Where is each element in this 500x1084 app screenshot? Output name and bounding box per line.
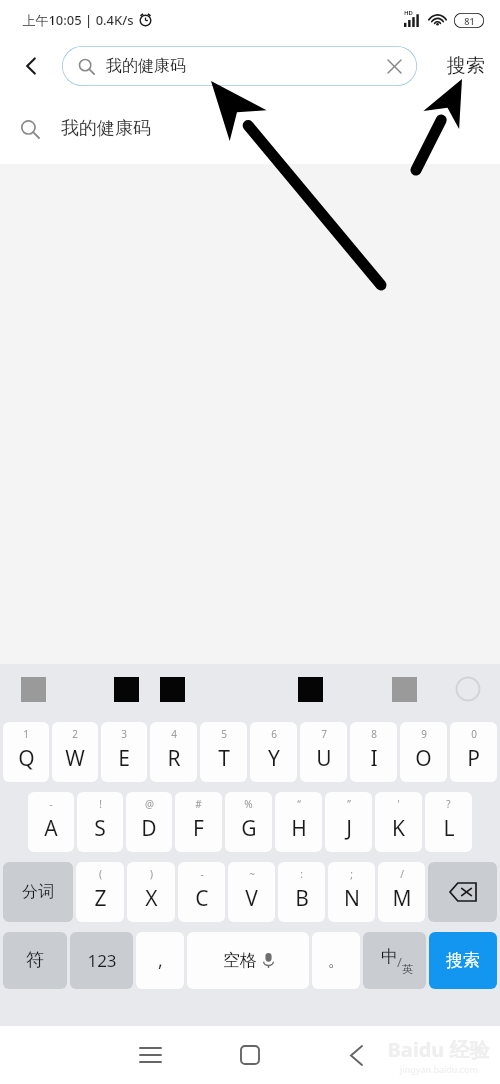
staticText: 9 — [421, 727, 427, 741]
button[interactable]: Home — [230, 1026, 270, 1084]
button[interactable]: 5 — [200, 722, 247, 782]
staticText: 上午10:05 | 0.4K/s — [22, 11, 134, 29]
button[interactable]: 符 — [3, 932, 67, 989]
staticText: X — [145, 884, 158, 913]
button[interactable]: 9 — [400, 722, 447, 782]
staticText: 搜索 — [447, 54, 485, 78]
staticText: % — [244, 797, 253, 811]
staticText: 4 — [171, 727, 177, 741]
button[interactable]: “ — [275, 792, 322, 852]
staticText: / — [400, 867, 404, 881]
button[interactable]: 6 — [250, 722, 297, 782]
button[interactable]: ” — [325, 792, 372, 852]
button[interactable]: Clear — [381, 53, 407, 79]
button[interactable]: 分词 — [3, 862, 73, 922]
staticText: Y — [268, 744, 280, 773]
button[interactable]: 空格 — [187, 932, 309, 989]
staticText: 81 — [464, 15, 475, 27]
button[interactable]: 。 — [312, 932, 360, 989]
staticText: 6 — [271, 727, 277, 741]
button[interactable]: 搜索 — [429, 932, 497, 989]
staticText: ? — [446, 797, 451, 811]
staticText: 3 — [121, 727, 127, 741]
staticText: 我的健康码 — [61, 117, 151, 140]
staticText: B — [295, 884, 309, 913]
staticText: C — [195, 884, 209, 913]
staticText: D — [141, 814, 157, 843]
button[interactable]: 2 — [52, 722, 98, 782]
button[interactable]: - — [178, 862, 225, 922]
button[interactable]: Keyboard settings — [455, 676, 481, 702]
button[interactable]: ~ — [228, 862, 275, 922]
button[interactable]: 123 — [70, 932, 133, 989]
staticText: A — [44, 814, 58, 843]
staticText: 0 — [471, 727, 477, 741]
staticText: J — [346, 814, 352, 843]
button[interactable]: 8 — [350, 722, 397, 782]
staticText: @ — [145, 797, 154, 811]
staticText: , — [158, 948, 163, 973]
button[interactable]: Backspace — [428, 862, 497, 922]
staticText: Baidu 经验 — [387, 1036, 490, 1063]
button[interactable]: Back — [14, 48, 50, 84]
staticText: ” — [347, 797, 351, 811]
staticText: I — [370, 744, 378, 773]
staticText: 。 — [328, 951, 344, 971]
staticText: L — [443, 814, 455, 843]
staticText: 我的健康码 — [106, 56, 186, 76]
staticText: 符 — [26, 949, 44, 972]
staticText: G — [241, 814, 257, 843]
staticText: 123 — [87, 949, 117, 972]
button[interactable]: 3 — [101, 722, 147, 782]
button[interactable]: 7 — [300, 722, 347, 782]
button[interactable]: ? — [425, 792, 472, 852]
button[interactable]: 我的健康码 — [0, 92, 500, 164]
button[interactable]: ) — [127, 862, 175, 922]
staticText: ' — [397, 797, 400, 811]
button[interactable]: Back — [336, 1026, 376, 1084]
staticText: ~ — [249, 867, 255, 881]
staticText: 8 — [371, 727, 377, 741]
button[interactable]: @ — [126, 792, 172, 852]
staticText: P — [467, 744, 480, 773]
button[interactable]: 我的健康码 — [62, 46, 417, 86]
staticText: 分词 — [22, 882, 54, 902]
button[interactable]: Menu — [130, 1026, 170, 1084]
staticText: U — [316, 744, 332, 773]
staticText: HD — [404, 9, 413, 17]
staticText: F — [193, 814, 204, 843]
staticText: E — [118, 744, 130, 773]
staticText: Q — [18, 744, 35, 773]
button[interactable]: # — [175, 792, 222, 852]
staticText: S — [94, 814, 106, 843]
staticText: W — [65, 744, 85, 773]
staticText: M — [392, 884, 412, 913]
staticText: T — [218, 744, 230, 773]
button[interactable]: % — [225, 792, 272, 852]
button[interactable]: ( — [76, 862, 124, 922]
button[interactable]: 0 — [450, 722, 497, 782]
button[interactable]: 4 — [150, 722, 197, 782]
button[interactable]: 中 — [363, 932, 426, 989]
staticText: - — [49, 797, 53, 811]
staticText: 5 — [221, 727, 227, 741]
button[interactable]: - — [28, 792, 74, 852]
button[interactable]: ' — [375, 792, 422, 852]
button[interactable]: 1 — [3, 722, 49, 782]
button[interactable]: ; — [328, 862, 375, 922]
button[interactable]: ! — [77, 792, 123, 852]
staticText: ! — [99, 797, 102, 811]
staticText: / — [397, 953, 402, 971]
button[interactable]: / — [378, 862, 425, 922]
button[interactable]: : — [278, 862, 325, 922]
staticText: R — [167, 744, 181, 773]
staticText: : — [300, 867, 303, 881]
button[interactable]: 搜索 — [447, 44, 485, 88]
staticText: # — [195, 797, 202, 811]
button[interactable]: , — [136, 932, 184, 989]
